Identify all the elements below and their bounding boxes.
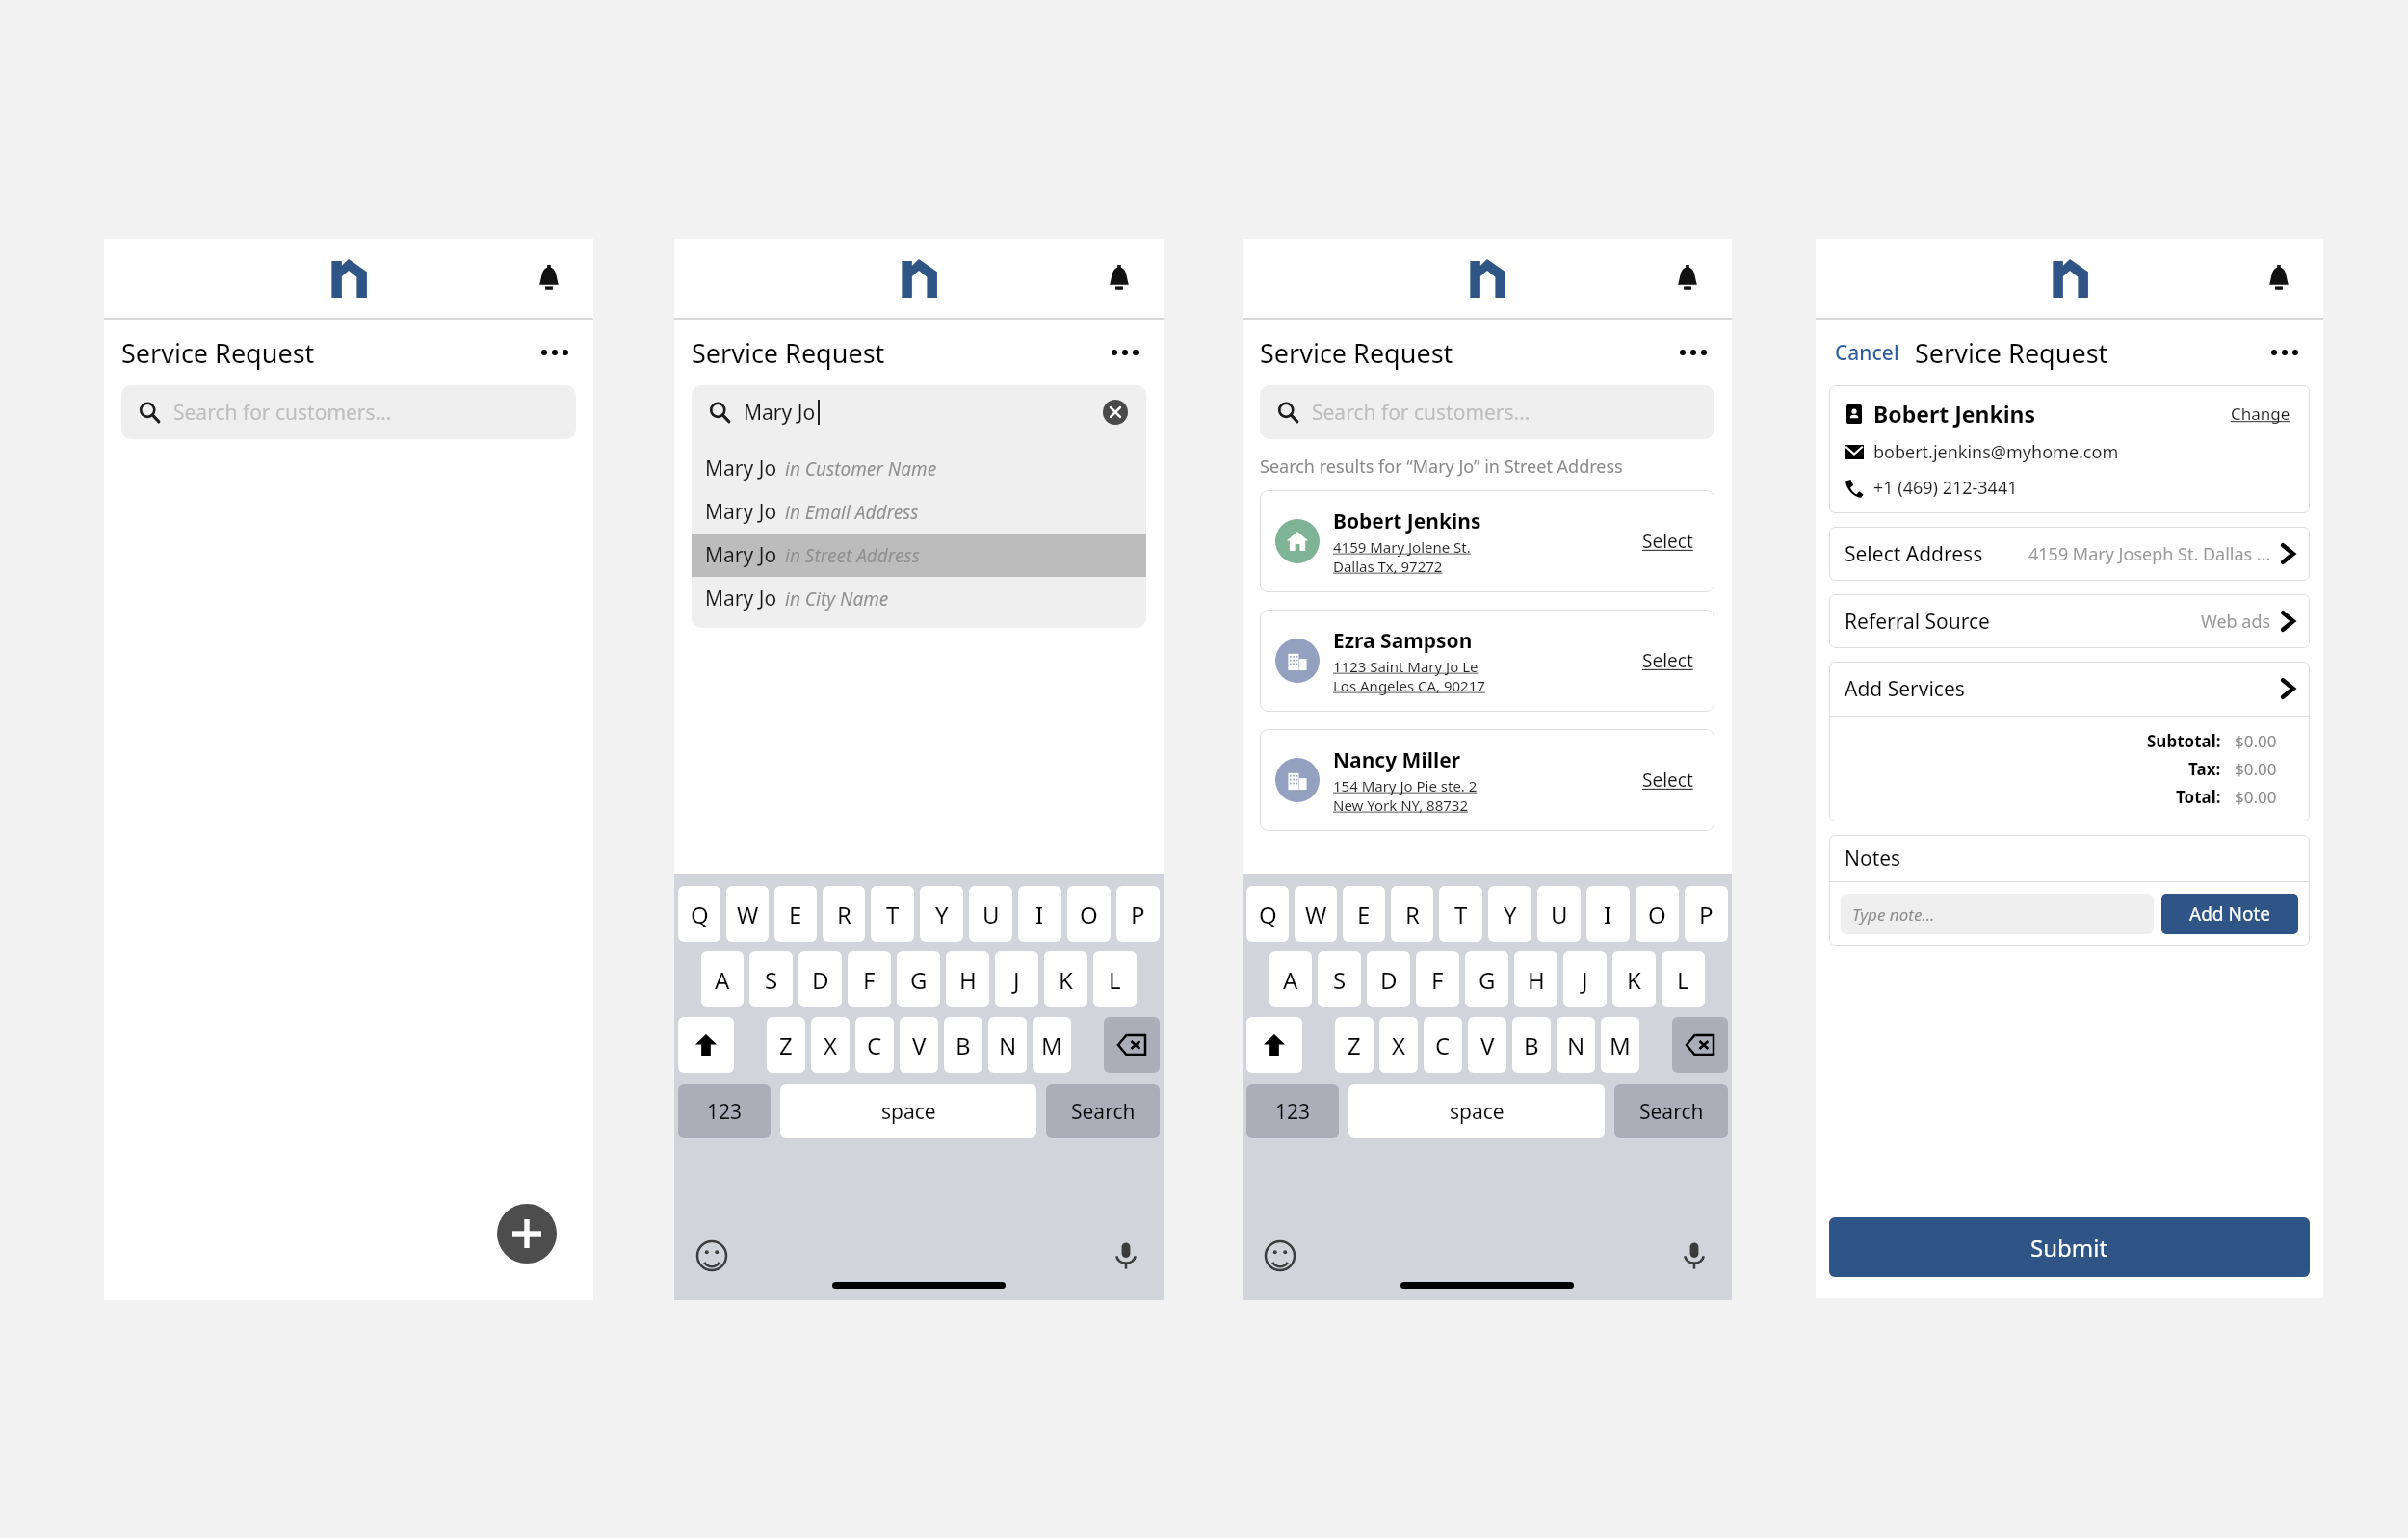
button[interactable]: Ezra Sampson [1260, 610, 1714, 712]
button[interactable]: 123 [1246, 1084, 1339, 1138]
button[interactable]: I [1018, 886, 1061, 942]
button[interactable]: Y [1488, 886, 1531, 942]
button[interactable]: Emoji [695, 1239, 728, 1272]
button[interactable]: Notifications [2260, 259, 2298, 298]
button[interactable]: space [780, 1084, 1036, 1138]
button[interactable]: W [726, 886, 769, 942]
button[interactable]: Search [1614, 1084, 1728, 1138]
button[interactable]: Mary Jo [692, 490, 1146, 534]
button[interactable]: Nancy Miller [1260, 729, 1714, 831]
button[interactable]: Mary Jo [692, 577, 1146, 620]
button[interactable]: Backspace [1672, 1017, 1728, 1073]
button[interactable]: More options [1104, 331, 1146, 374]
button[interactable]: H [1514, 951, 1557, 1007]
staticText: Subtotal: [2147, 730, 2221, 752]
button[interactable]: O [1067, 886, 1111, 942]
button[interactable]: Z [767, 1017, 805, 1073]
button[interactable]: Select [1636, 642, 1699, 679]
button[interactable]: B [1512, 1017, 1551, 1073]
button[interactable]: Notifications [1100, 259, 1139, 298]
button[interactable]: E [774, 886, 817, 942]
button[interactable]: M [1601, 1017, 1639, 1073]
button[interactable]: Notifications [1668, 259, 1707, 298]
button[interactable]: V [1468, 1017, 1506, 1073]
button[interactable]: Bobert Jenkins [1260, 490, 1714, 592]
button[interactable]: U [969, 886, 1012, 942]
button[interactable]: J [995, 951, 1038, 1007]
button[interactable]: W [1295, 886, 1337, 942]
button[interactable]: Referral Source [1829, 594, 2310, 648]
button[interactable]: Backspace [1104, 1017, 1160, 1073]
button[interactable]: F [848, 951, 891, 1007]
button[interactable]: A [701, 951, 744, 1007]
button[interactable]: Add Note [2161, 894, 2298, 934]
button[interactable]: T [1439, 886, 1482, 942]
button[interactable]: X [811, 1017, 850, 1073]
button[interactable]: M [1033, 1017, 1071, 1073]
button[interactable]: L [1662, 951, 1705, 1007]
button[interactable]: L [1093, 951, 1137, 1007]
button[interactable]: Submit [1829, 1217, 2310, 1277]
button[interactable]: More options [1672, 331, 1714, 374]
button[interactable]: D [1367, 951, 1410, 1007]
button[interactable]: I [1586, 886, 1630, 942]
button[interactable]: H [946, 951, 989, 1007]
button[interactable]: E [1343, 886, 1385, 942]
staticText: M [1041, 1030, 1062, 1061]
button[interactable]: C [855, 1017, 894, 1073]
button[interactable]: Add Services [1829, 662, 2310, 716]
button[interactable]: Emoji [1264, 1239, 1296, 1272]
button[interactable]: N [1557, 1017, 1595, 1073]
button[interactable]: Add service request [497, 1204, 557, 1264]
button[interactable]: Voice input [1110, 1239, 1142, 1272]
button[interactable]: G [897, 951, 940, 1007]
button[interactable]: space [1348, 1084, 1605, 1138]
button[interactable]: Mary Jo [692, 534, 1146, 577]
button[interactable]: Select Address [1829, 527, 2310, 581]
button[interactable]: K [1612, 951, 1656, 1007]
button[interactable]: P [1116, 886, 1160, 942]
button[interactable]: X [1379, 1017, 1418, 1073]
button[interactable]: R [1391, 886, 1433, 942]
button[interactable]: B [944, 1017, 982, 1073]
button[interactable]: Shift [1246, 1017, 1302, 1073]
button[interactable]: More options [2264, 331, 2306, 374]
button[interactable]: Bobert Jenkins [1829, 385, 2310, 513]
button[interactable]: Clear search [1102, 399, 1129, 426]
button[interactable]: U [1537, 886, 1581, 942]
button[interactable]: Select [1636, 523, 1699, 560]
button[interactable]: Mary Jo [692, 447, 1146, 490]
button[interactable]: Z [1335, 1017, 1374, 1073]
button[interactable]: Change [2227, 399, 2294, 429]
button[interactable]: 123 [678, 1084, 771, 1138]
button[interactable]: More options [534, 331, 576, 374]
button[interactable]: Mary Jo [692, 385, 1146, 439]
button[interactable]: Cancel [1833, 333, 1901, 373]
button[interactable]: R [823, 886, 865, 942]
button[interactable]: Shift [678, 1017, 734, 1073]
button[interactable]: Y [920, 886, 963, 942]
button[interactable]: Q [678, 886, 720, 942]
button[interactable]: V [900, 1017, 938, 1073]
button[interactable]: S [1318, 951, 1361, 1007]
button[interactable]: O [1636, 886, 1679, 942]
button[interactable]: Voice input [1678, 1239, 1711, 1272]
button[interactable]: S [749, 951, 793, 1007]
button[interactable]: C [1424, 1017, 1462, 1073]
button[interactable]: N [988, 1017, 1027, 1073]
button[interactable]: Notifications [530, 259, 568, 298]
button[interactable]: P [1685, 886, 1728, 942]
button[interactable]: F [1416, 951, 1459, 1007]
button[interactable]: Search for customers... [121, 385, 576, 439]
button[interactable]: A [1269, 951, 1312, 1007]
button[interactable]: Search [1046, 1084, 1160, 1138]
button[interactable]: Search for customers... [1260, 385, 1714, 439]
button[interactable]: K [1044, 951, 1087, 1007]
button[interactable]: Q [1246, 886, 1289, 942]
button[interactable]: T [871, 886, 914, 942]
button[interactable]: J [1563, 951, 1607, 1007]
button[interactable]: G [1465, 951, 1508, 1007]
button[interactable]: Type note... [1841, 894, 2154, 934]
button[interactable]: Select [1636, 762, 1699, 798]
button[interactable]: D [798, 951, 842, 1007]
